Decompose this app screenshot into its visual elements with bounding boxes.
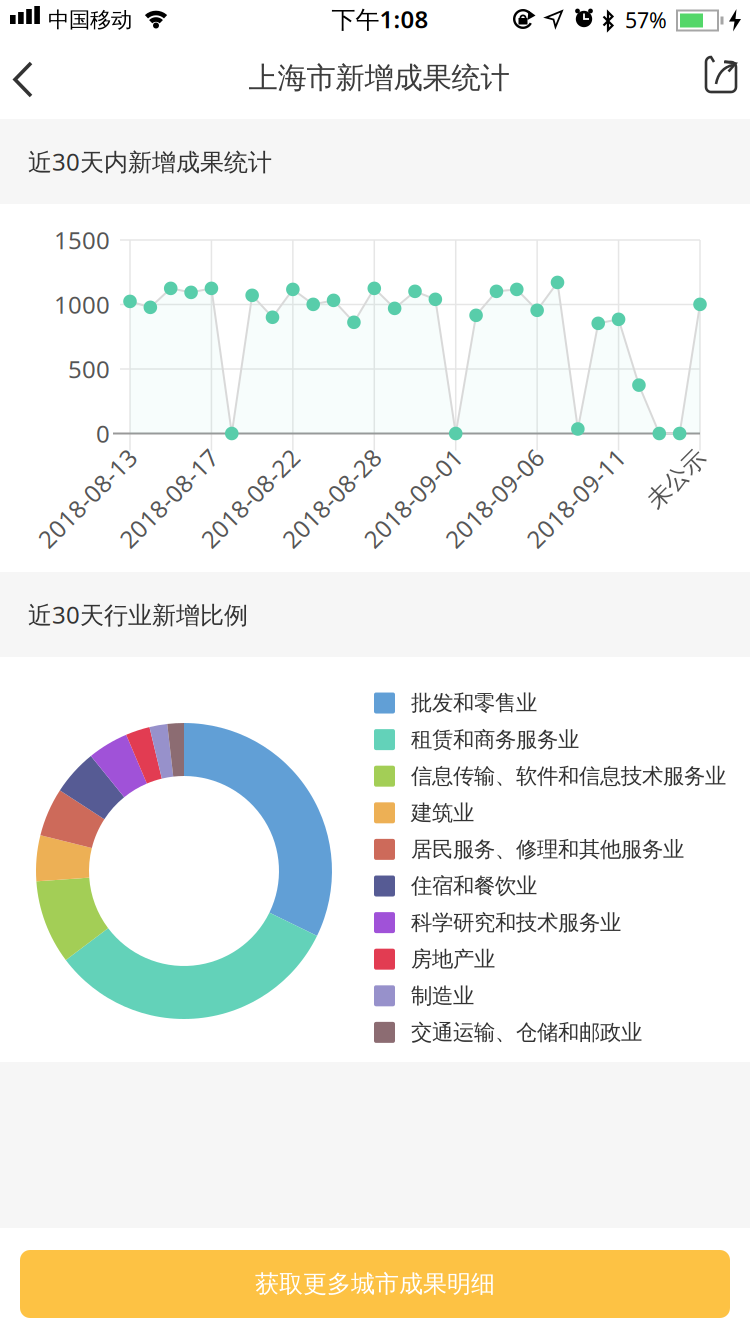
- button[interactable]: 获取更多城市成果明细: [20, 1250, 730, 1318]
- staticText: 0: [96, 418, 110, 449]
- staticText: 租赁和商务服务业: [411, 726, 579, 753]
- staticText: 交通运输、仓储和邮政业: [411, 1019, 642, 1045]
- staticText: 居民服务、修理和其他服务业: [411, 836, 684, 862]
- staticText: 2018-09-06: [431, 482, 559, 514]
- staticText: 2018-09-01: [349, 482, 477, 514]
- staticText: 制造业: [411, 983, 474, 1009]
- staticText: 500: [68, 353, 110, 385]
- staticText: 1000: [54, 289, 110, 320]
- button[interactable]: Share: [686, 40, 750, 119]
- staticText: 1500: [54, 224, 110, 256]
- staticText: 2018-08-28: [268, 482, 396, 514]
- staticText: 建筑业: [411, 800, 474, 826]
- staticText: 房地产业: [411, 946, 495, 972]
- staticText: 未公示: [640, 464, 712, 494]
- staticText: 近30天行业新增比例: [28, 599, 248, 630]
- staticText: 信息传输、软件和信息技术服务业: [411, 763, 726, 789]
- staticText: 2018-09-11: [512, 482, 640, 514]
- staticText: 2018-08-17: [105, 482, 233, 514]
- staticText: 中国移动: [48, 7, 132, 33]
- button[interactable]: Back: [0, 40, 60, 119]
- staticText: 2018-08-13: [23, 482, 151, 514]
- staticText: 获取更多城市成果明细: [255, 1269, 495, 1299]
- staticText: 上海市新增成果统计: [248, 60, 509, 96]
- staticText: 住宿和餐饮业: [411, 873, 537, 899]
- staticText: 批发和零售业: [411, 690, 537, 716]
- staticText: 57%: [625, 6, 667, 34]
- staticText: 科学研究和技术服务业: [411, 909, 621, 936]
- staticText: 2018-08-22: [186, 482, 314, 514]
- staticText: 近30天内新增成果统计: [28, 146, 272, 177]
- staticText: 下午1:08: [331, 3, 428, 35]
